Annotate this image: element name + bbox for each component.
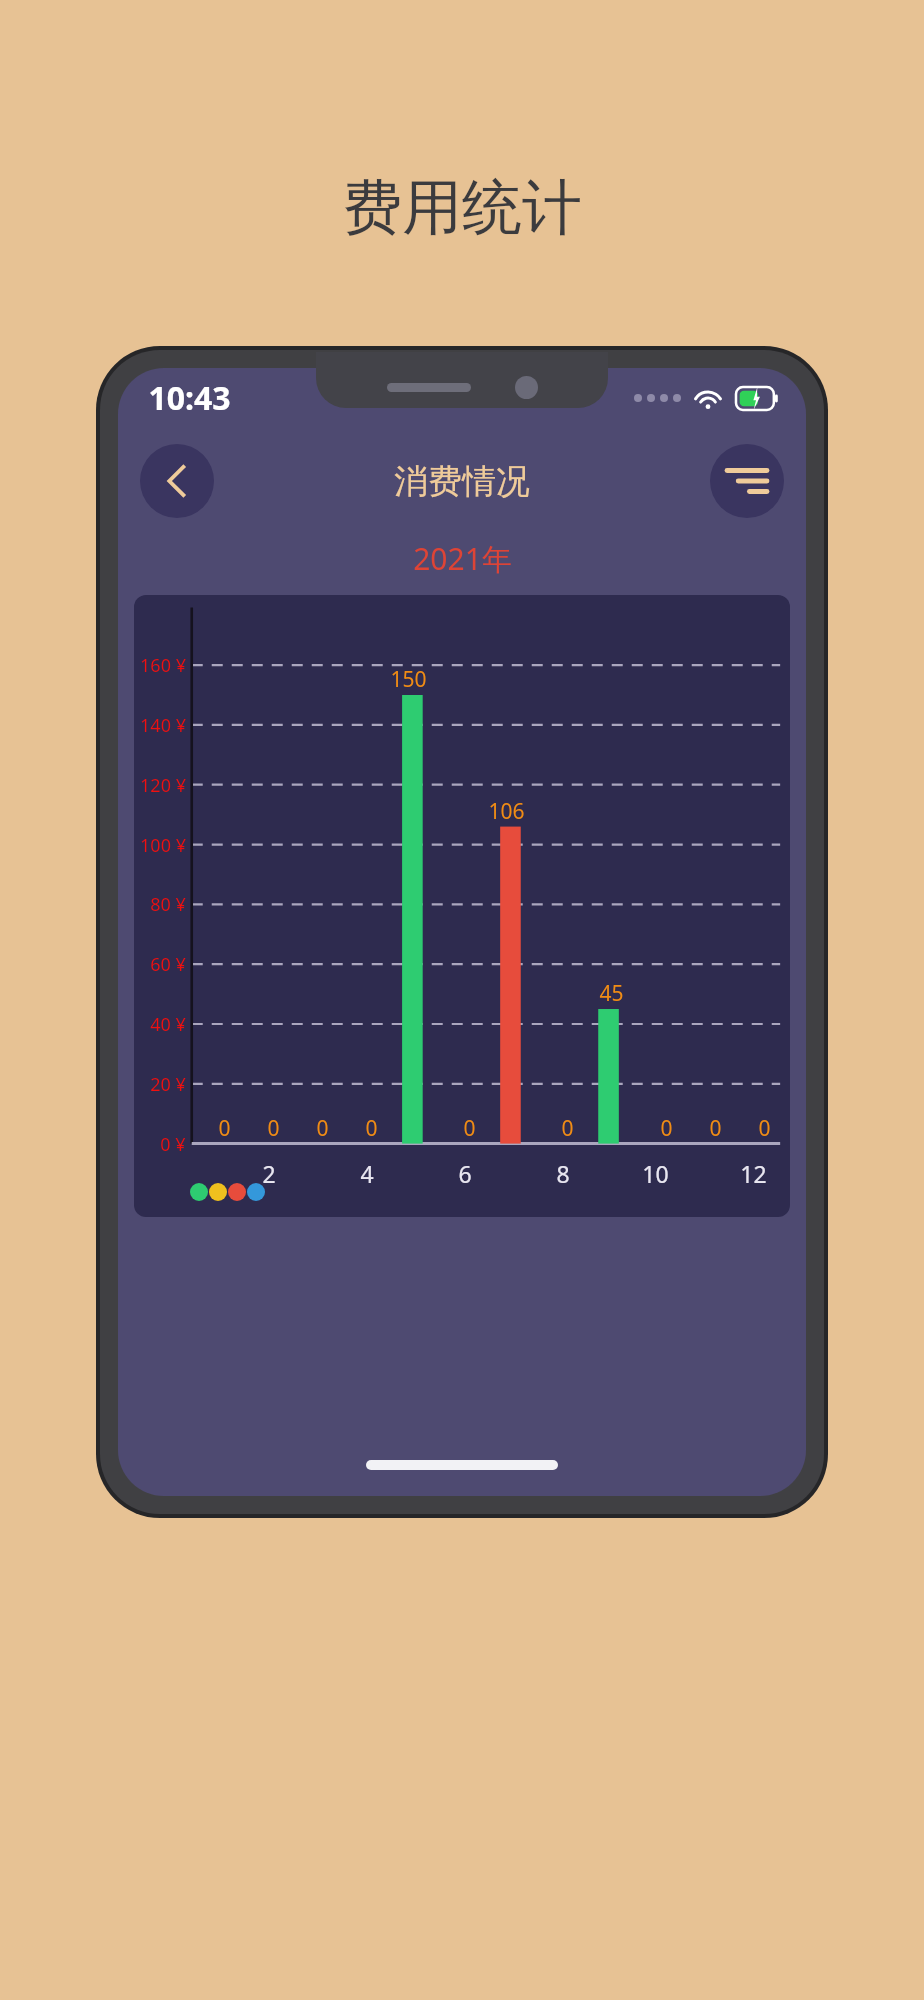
staticText: 0 <box>660 1114 673 1143</box>
staticText: 0 <box>758 1114 771 1143</box>
staticText: 100 ¥ <box>140 833 186 858</box>
button[interactable]: Menu <box>710 444 784 518</box>
staticText: 10:43 <box>148 376 231 420</box>
staticText: 0 <box>316 1114 329 1143</box>
staticText: 10 <box>642 1158 669 1189</box>
staticText: 12 <box>740 1158 767 1189</box>
staticText: 6 <box>458 1158 472 1189</box>
staticText: 140 ¥ <box>140 713 186 738</box>
staticText: 0 <box>267 1114 280 1143</box>
staticText: 45 <box>599 979 624 1008</box>
staticText: 8 <box>556 1158 570 1189</box>
staticText: 0 ¥ <box>160 1132 186 1157</box>
staticText: 4 <box>360 1158 374 1189</box>
staticText: 2 <box>262 1158 276 1189</box>
button[interactable]: Back <box>140 444 214 518</box>
staticText: 20 ¥ <box>150 1072 186 1097</box>
staticText: 0 <box>218 1114 231 1143</box>
staticText: 费用统计 <box>342 170 582 246</box>
staticText: 40 ¥ <box>150 1012 186 1037</box>
staticText: 120 ¥ <box>140 773 186 798</box>
staticText: 150 <box>390 665 427 694</box>
staticText: 0 <box>561 1114 574 1143</box>
staticText: 消费情况 <box>394 460 530 503</box>
staticText: 80 ¥ <box>150 892 186 917</box>
staticText: 60 ¥ <box>150 952 186 977</box>
staticText: 2021年 <box>413 538 512 579</box>
staticText: 106 <box>488 797 525 826</box>
staticText: 0 <box>709 1114 722 1143</box>
staticText: 160 ¥ <box>140 653 186 678</box>
staticText: 0 <box>365 1114 378 1143</box>
staticText: 0 <box>463 1114 476 1143</box>
